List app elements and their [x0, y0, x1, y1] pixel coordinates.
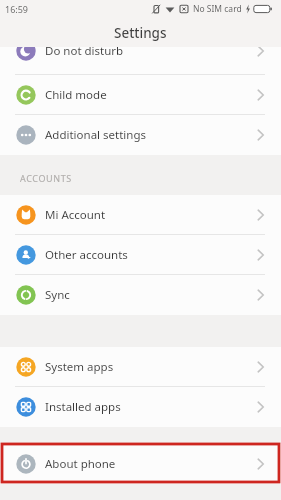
- staticText: Other accounts: [45, 247, 128, 263]
- button[interactable]: Sync: [0, 275, 281, 315]
- button[interactable]: Other accounts: [0, 235, 281, 275]
- staticText: Installed apps: [45, 399, 121, 415]
- button[interactable]: Child mode: [0, 75, 281, 115]
- staticText: Additional settings: [45, 127, 147, 143]
- staticText: No SIM card: [193, 3, 242, 15]
- staticText: Child mode: [45, 87, 107, 103]
- staticText: Mi Account: [45, 207, 106, 223]
- staticText: System apps: [45, 359, 114, 375]
- staticText: About phone: [45, 456, 116, 472]
- staticText: Sync: [45, 287, 70, 303]
- button[interactable]: Do not disturb: [0, 47, 281, 65]
- button[interactable]: Mi Account: [0, 195, 281, 235]
- staticText: Settings: [114, 24, 167, 42]
- button[interactable]: Settings: [0, 18, 281, 47]
- button[interactable]: Installed apps: [0, 387, 281, 427]
- button[interactable]: About phone: [0, 444, 281, 484]
- staticText: Do not disturb: [45, 47, 124, 59]
- staticText: 16:59: [5, 3, 29, 15]
- staticText: ACCOUNTS: [20, 172, 72, 184]
- button[interactable]: System apps: [0, 347, 281, 387]
- button[interactable]: Additional settings: [0, 115, 281, 155]
